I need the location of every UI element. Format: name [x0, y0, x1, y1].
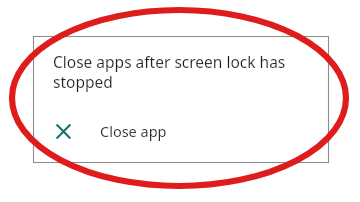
staticText: Close apps after screen lock has stopped — [53, 51, 315, 92]
other: Close app — [53, 121, 73, 141]
staticText: Close app — [100, 121, 167, 141]
button[interactable]: Close app — [53, 114, 233, 148]
